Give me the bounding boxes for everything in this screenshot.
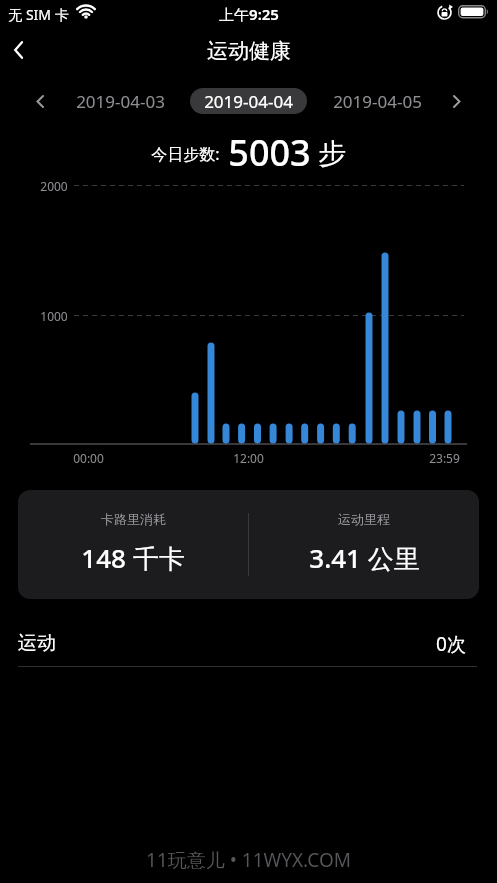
staticText: 步 [318,136,346,171]
staticText: 5003 [228,128,311,176]
staticText: 2019-04-03 [76,90,165,113]
staticText: 0次 [436,631,466,657]
staticText: 12:00 [233,450,264,466]
staticText: 卡路里消耗 [101,511,166,527]
staticText: 11玩意儿 • 11WYX.COM [146,847,351,873]
staticText: 上午9:25 [219,4,279,24]
staticText: 运动 [18,631,56,655]
staticText: 今日步数: [151,143,220,165]
staticText: 2019-04-04 [204,90,293,113]
staticText: 23:59 [429,450,460,466]
staticText: 2019-04-05 [333,90,422,113]
staticText: 2000 [40,178,68,194]
staticText: 3.41 公里 [309,540,420,576]
staticText: 无 SIM 卡 [8,5,69,24]
staticText: 1000 [40,308,68,324]
staticText: 运动健康 [207,38,291,64]
staticText: 148 千卡 [81,540,185,576]
staticText: 00:00 [73,450,104,466]
staticText: 运动里程 [338,511,390,527]
